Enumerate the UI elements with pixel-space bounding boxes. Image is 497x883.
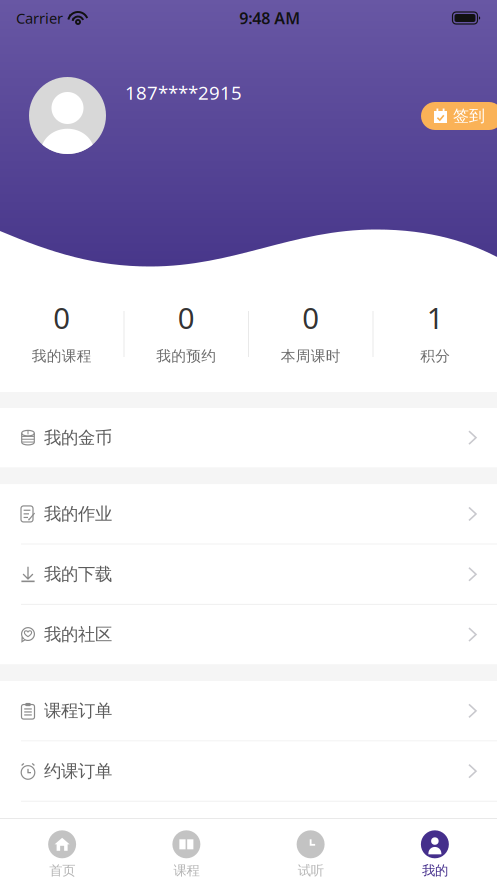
staticText: 0 (302, 298, 319, 337)
staticText: 电子收据 (44, 821, 112, 842)
button[interactable]: 试听 (248, 822, 373, 879)
staticText: 约课订单 (44, 760, 112, 782)
button[interactable]: 约课订单 (0, 741, 497, 801)
staticText: 我的社区 (44, 624, 112, 645)
staticText: Carrier (16, 8, 63, 28)
staticText: 我的课程 (32, 347, 92, 365)
button[interactable]: 我的下载 (0, 545, 497, 604)
button[interactable]: 0 (0, 270, 123, 392)
staticText: 我的 (422, 862, 448, 879)
button[interactable]: 电子收据 (0, 802, 497, 861)
staticText: 我的下载 (44, 564, 112, 585)
button[interactable]: 课程 (124, 822, 248, 879)
button[interactable]: 0 (249, 270, 372, 392)
button[interactable]: 我的作业 (0, 484, 497, 544)
staticText: 课程 (173, 862, 199, 879)
staticText: 0 (178, 298, 195, 337)
staticText: 课程订单 (44, 700, 112, 721)
staticText: 签到 (453, 106, 485, 126)
staticText: 187****2915 (125, 80, 242, 105)
staticText: 1 (427, 298, 444, 337)
button[interactable]: 首页 (0, 822, 124, 879)
staticText: 本周课时 (281, 347, 341, 365)
staticText: 积分 (420, 347, 450, 365)
staticText: 我的金币 (44, 427, 112, 448)
staticText: 9:48 AM (239, 7, 300, 29)
staticText: 首页 (49, 862, 75, 879)
button[interactable]: 我的 (373, 822, 497, 879)
staticText: 0 (53, 298, 70, 337)
staticText: 试听 (298, 862, 324, 879)
button[interactable]: 0 (124, 270, 248, 392)
button[interactable]: 签到 (421, 102, 497, 130)
button[interactable]: 我的金币 (0, 408, 497, 467)
staticText: 我的作业 (44, 503, 112, 525)
staticText: 我的预约 (156, 347, 216, 365)
button[interactable]: 1 (373, 270, 497, 392)
button[interactable]: 课程订单 (0, 681, 497, 740)
button[interactable]: 我的社区 (0, 605, 497, 664)
